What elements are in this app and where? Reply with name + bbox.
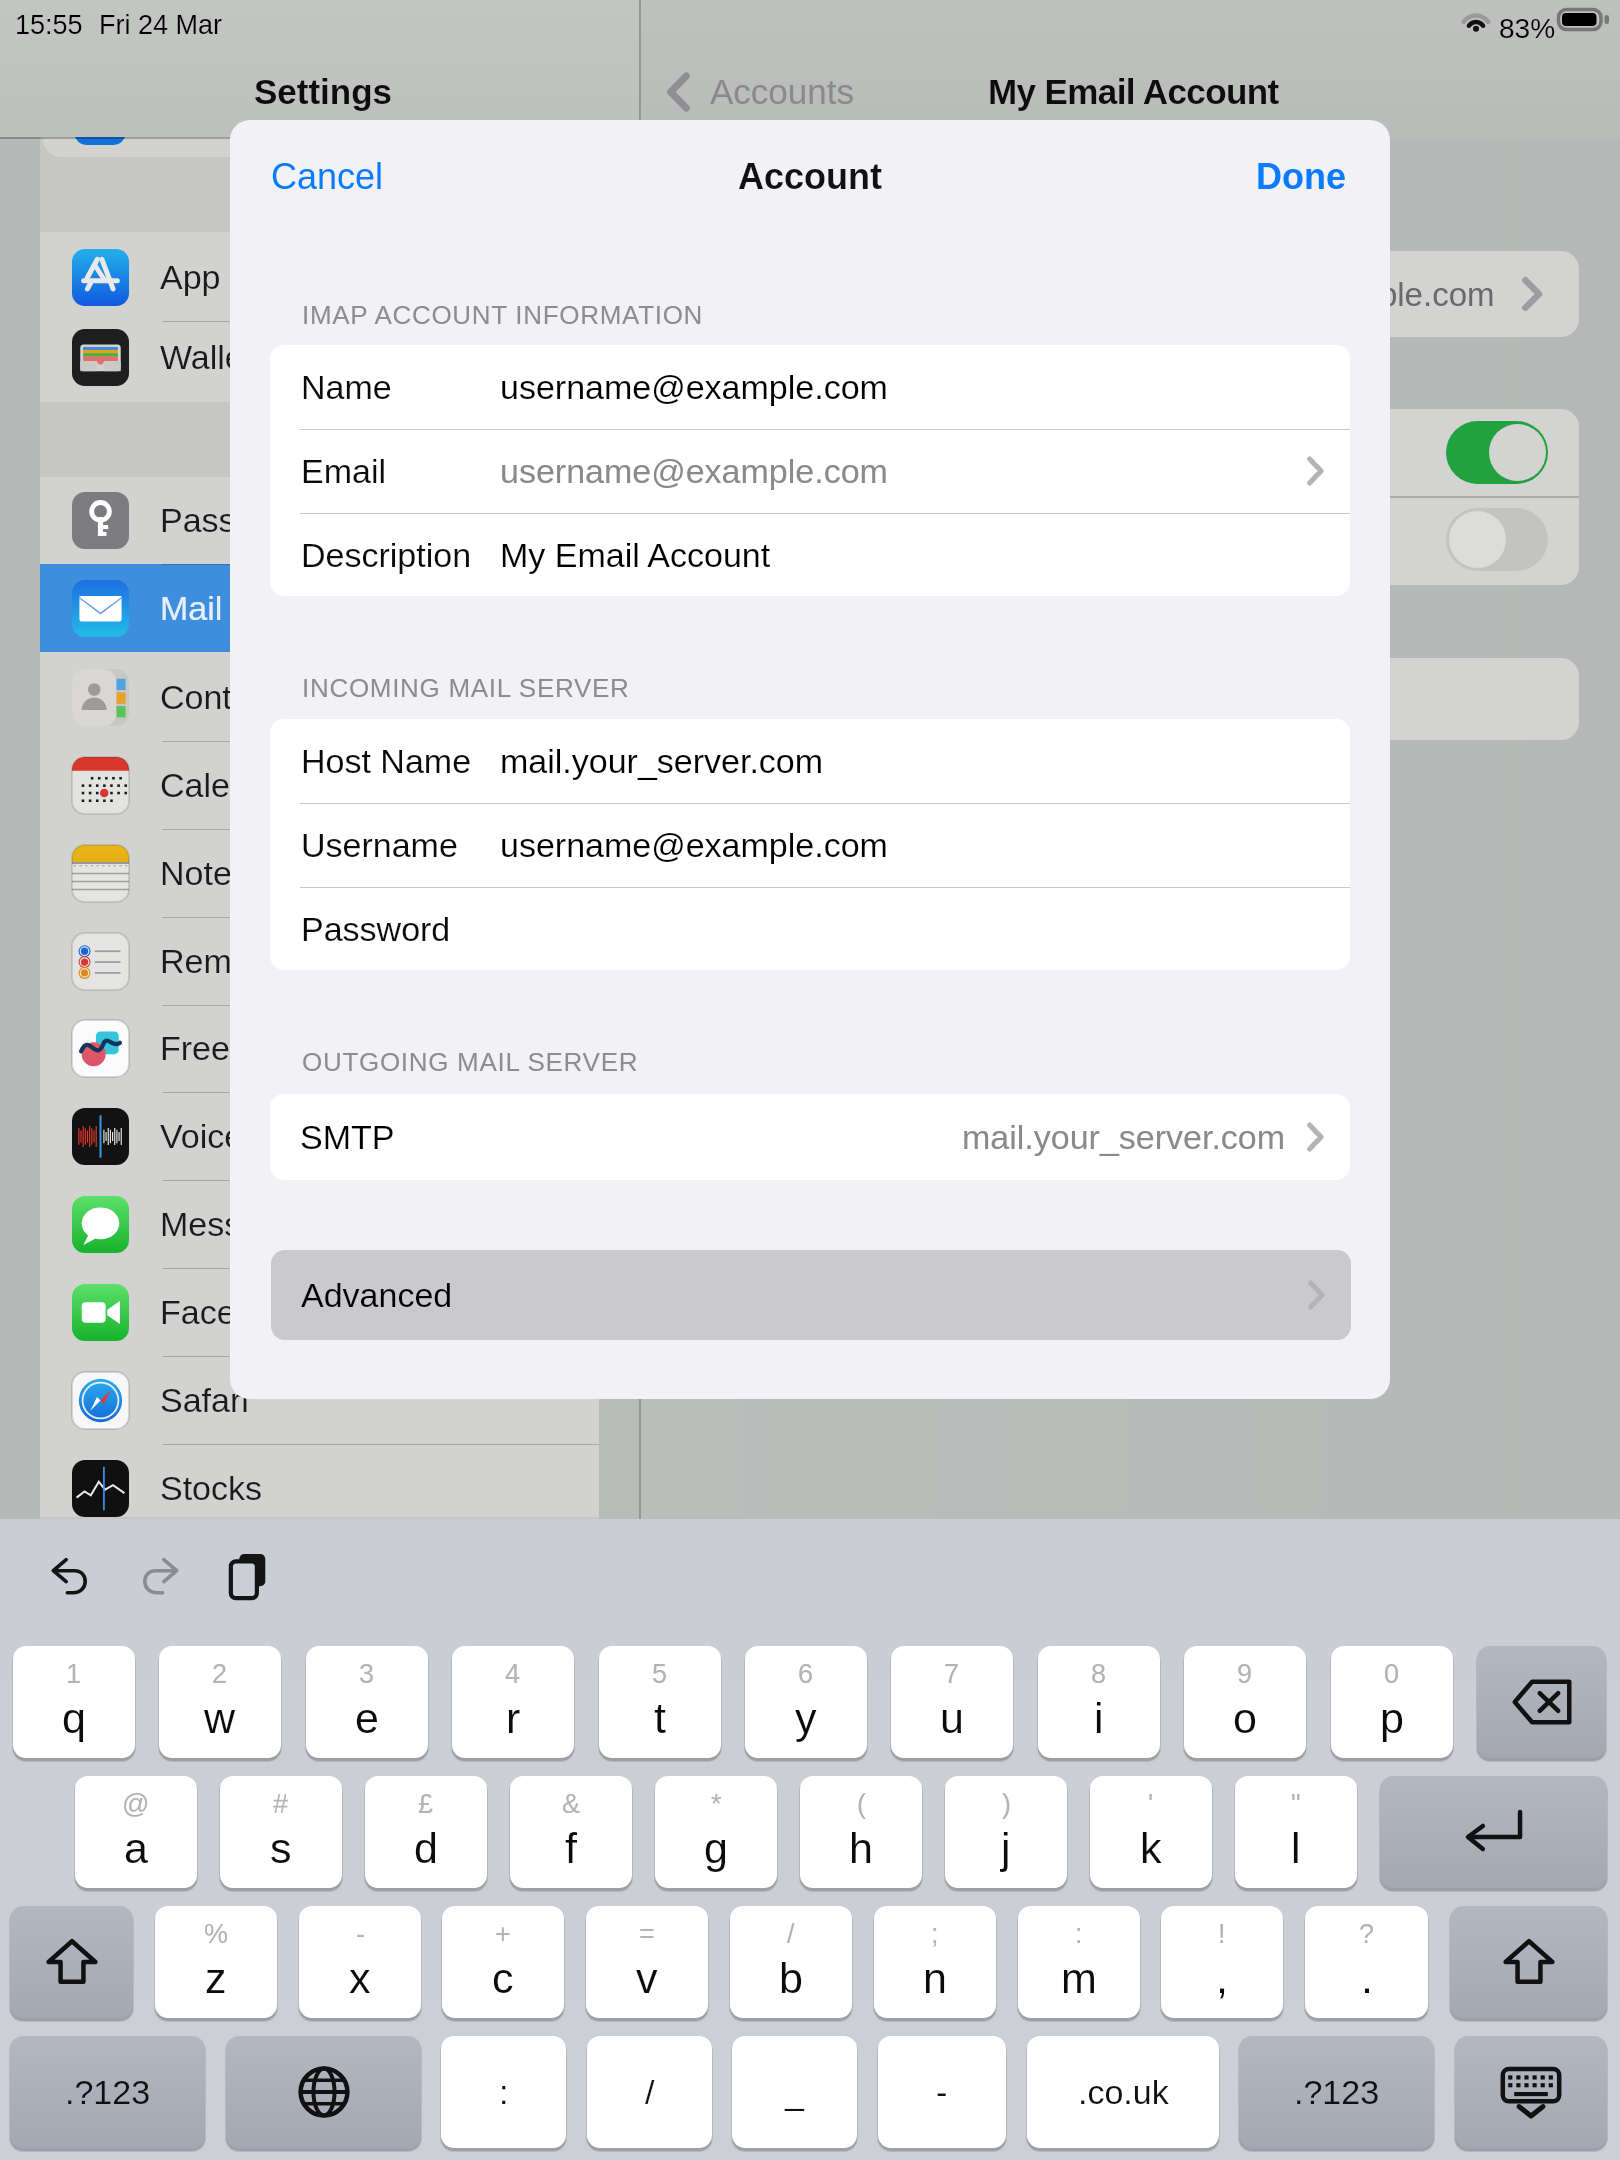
staticText: r [506, 1694, 521, 1742]
button[interactable]: Notes [40, 829, 599, 917]
staticText: £ [418, 1789, 434, 1819]
button[interactable]: .?123 [10, 2036, 205, 2148]
button[interactable]: - [878, 2036, 1006, 2148]
button[interactable]: Voice Memos [40, 1092, 599, 1180]
button[interactable]: 7 [891, 1646, 1013, 1758]
button[interactable]: Contacts [40, 653, 599, 741]
staticText: Username [301, 826, 458, 864]
button[interactable]: ( [800, 1776, 922, 1888]
button[interactable]: £ [365, 1776, 487, 1888]
button[interactable]: Stocks [40, 1444, 599, 1532]
staticText: mail.your_server.com [500, 742, 824, 780]
button[interactable]: 2 [159, 1646, 281, 1758]
staticText: Freeform [160, 1029, 298, 1067]
button[interactable]: / [587, 2036, 712, 2148]
button[interactable]: .?123 [1239, 2036, 1434, 2148]
button[interactable]: 8 [1038, 1646, 1160, 1758]
button[interactable]: 0 [1331, 1646, 1453, 1758]
staticText: _ [785, 2073, 804, 2111]
staticText: Done [1256, 156, 1346, 196]
button[interactable]: Backspace [1477, 1646, 1606, 1758]
button[interactable]: Switch keyboard language [226, 2036, 421, 2148]
button[interactable]: .co.uk [1027, 2036, 1219, 2148]
button[interactable]: App Store [40, 233, 599, 321]
button[interactable]: Email [270, 429, 1350, 513]
button[interactable]: % [155, 1906, 277, 2018]
button[interactable]: ) [945, 1776, 1067, 1888]
staticText: 15:55 [15, 10, 83, 40]
button[interactable]: = [586, 1906, 708, 2018]
staticText: IMAP ACCOUNT INFORMATION [302, 300, 704, 329]
staticText: , [1216, 1954, 1228, 2002]
button[interactable]: Password [270, 887, 1350, 970]
button[interactable]: Username [270, 803, 1350, 887]
button[interactable]: Shift [10, 1906, 133, 2018]
button[interactable]: Toggle off [1446, 508, 1548, 571]
button[interactable]: Host Name [270, 719, 1350, 803]
staticText: Mail [160, 589, 223, 627]
button[interactable]: # [220, 1776, 342, 1888]
button[interactable]: 5 [599, 1646, 721, 1758]
button[interactable]: Safari [40, 1356, 599, 1444]
staticText: 0 [1384, 1659, 1400, 1689]
button[interactable]: Messages [40, 1180, 599, 1268]
button[interactable]: + [442, 1906, 564, 2018]
button[interactable]: : [441, 2036, 566, 2148]
button[interactable]: Calendar [40, 741, 599, 829]
button[interactable]: ; [874, 1906, 996, 2018]
staticText: Email [301, 452, 387, 490]
button[interactable]: Paste [230, 1554, 272, 1600]
button[interactable]: _ [732, 2036, 857, 2148]
staticText: s [270, 1824, 292, 1872]
staticText: & [562, 1789, 581, 1819]
button[interactable]: Undo [51, 1557, 89, 1595]
button[interactable]: Cancel [230, 138, 416, 214]
button[interactable]: Description [270, 513, 1350, 596]
button[interactable]: Reminders [40, 917, 599, 1005]
button[interactable]: Passwords [40, 476, 599, 564]
staticText: - [936, 2073, 948, 2111]
button[interactable]: Advanced [271, 1250, 1351, 1340]
button[interactable]: Freeform [40, 1004, 599, 1092]
button[interactable]: 9 [1184, 1646, 1306, 1758]
staticText: g [704, 1824, 728, 1872]
button[interactable]: ' [1090, 1776, 1212, 1888]
button[interactable]: Toggle on [1446, 421, 1548, 484]
button[interactable]: ! [1161, 1906, 1283, 2018]
button[interactable]: Return [1380, 1776, 1607, 1888]
button[interactable]: Mail [40, 564, 599, 652]
button[interactable]: SMTP [270, 1094, 1350, 1180]
button[interactable]: 1 [13, 1646, 135, 1758]
button[interactable]: @ [75, 1776, 197, 1888]
button[interactable]: 4 [452, 1646, 574, 1758]
button[interactable]: Wallet [40, 313, 599, 401]
staticText: Reminders [160, 942, 325, 980]
button[interactable]: " [1235, 1776, 1357, 1888]
button[interactable]: Name [270, 345, 1350, 429]
button[interactable]: 3 [306, 1646, 428, 1758]
button[interactable]: * [655, 1776, 777, 1888]
staticText: 4 [505, 1659, 521, 1689]
staticText: z [205, 1954, 227, 2002]
button[interactable]: username@example.com [700, 251, 1579, 337]
button[interactable]: FaceTime [40, 1268, 599, 1356]
button[interactable]: / [730, 1906, 852, 2018]
button[interactable]: Done [1226, 138, 1390, 214]
staticText: My Email Account [500, 536, 771, 574]
button[interactable]: 6 [745, 1646, 867, 1758]
staticText: % [204, 1919, 229, 1949]
button[interactable]: Shift [1450, 1906, 1607, 2018]
button[interactable]: Back to Accounts [660, 64, 896, 120]
button[interactable]: : [1018, 1906, 1140, 2018]
staticText: w [204, 1694, 236, 1742]
staticText: Wallet [160, 338, 254, 376]
staticText: 3 [359, 1659, 375, 1689]
button[interactable]: ? [1305, 1906, 1428, 2018]
button[interactable]: & [510, 1776, 632, 1888]
staticText: @ [122, 1789, 150, 1819]
button[interactable]: - [299, 1906, 421, 2018]
staticText: Stocks [160, 1469, 263, 1507]
button[interactable]: Hide keyboard [1455, 2036, 1607, 2148]
staticText: username@example.com [500, 452, 888, 490]
button[interactable]: Redo [141, 1557, 179, 1595]
